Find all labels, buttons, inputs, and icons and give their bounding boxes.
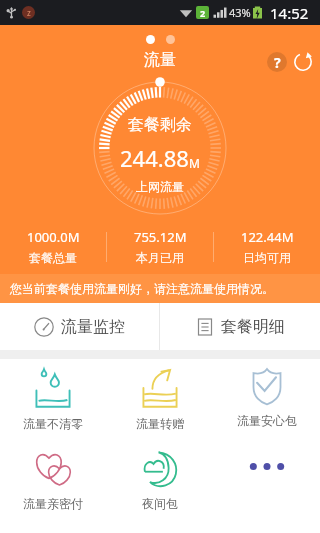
staticText: 244.88 [120, 143, 189, 173]
staticText: 流量安心包 [237, 413, 297, 428]
button[interactable]: 流量监控 [0, 303, 159, 350]
staticText: 日均可用 [243, 250, 291, 265]
button[interactable]: 1000.0M [0, 226, 106, 267]
button[interactable]: 流量不清零 [0, 359, 106, 442]
staticText: z [27, 7, 31, 18]
staticText: 流量 [144, 50, 176, 70]
staticText: 上网流量 [136, 179, 184, 194]
staticText: ? [274, 53, 281, 72]
staticText: 122.44M [241, 228, 294, 246]
button[interactable] [213, 442, 320, 525]
staticText: 43% [229, 5, 251, 20]
staticText: 流量亲密付 [23, 496, 83, 511]
staticText: 755.12M [134, 228, 187, 246]
staticText: 本月已用 [136, 250, 184, 265]
staticText: 2 [200, 7, 206, 19]
button[interactable]: 您当前套餐使用流量刚好，请注意流量使用情况。 [0, 274, 320, 303]
button[interactable]: 流量亲密付 [0, 442, 106, 525]
button[interactable]: 套餐明细 [160, 303, 320, 350]
staticText: 流量不清零 [23, 416, 83, 431]
button[interactable]: 755.12M [107, 226, 213, 267]
staticText: 套餐剩余 [128, 115, 192, 135]
staticText: 1000.0M [27, 228, 80, 246]
button[interactable]: 122.44M [214, 226, 320, 267]
button[interactable]: 夜间包 [106, 442, 213, 525]
button[interactable]: 帮助 [267, 52, 287, 72]
button[interactable]: 刷新 [293, 52, 313, 72]
staticText: 套餐明细 [221, 317, 285, 337]
staticText: M [189, 155, 200, 171]
staticText: 夜间包 [142, 496, 178, 511]
staticText: 套餐总量 [29, 250, 77, 265]
staticText: 您当前套餐使用流量刚好，请注意流量使用情况。 [10, 281, 274, 296]
button[interactable]: 流量安心包 [213, 359, 320, 442]
staticText: 流量转赠 [136, 416, 184, 431]
staticText: 流量监控 [61, 317, 125, 337]
staticText: 14:52 [270, 3, 309, 23]
button[interactable]: 流量转赠 [106, 359, 213, 442]
